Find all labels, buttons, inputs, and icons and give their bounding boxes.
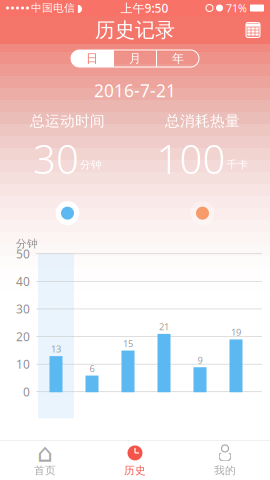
staticText: 总消耗热量 bbox=[165, 112, 240, 130]
staticText: 2016-7-21 bbox=[94, 79, 176, 102]
button[interactable]: 日 bbox=[71, 50, 113, 67]
staticText: 分钟 bbox=[16, 237, 38, 250]
staticText: 71% bbox=[226, 1, 247, 15]
staticText: 40 bbox=[16, 273, 30, 289]
staticText: 9 bbox=[197, 354, 202, 366]
button[interactable]: 年 bbox=[157, 50, 199, 67]
button[interactable]: ⌂ bbox=[0, 441, 90, 480]
staticText: 上午9:50 bbox=[120, 0, 168, 16]
staticText: 20 bbox=[16, 329, 30, 344]
staticText: 首页 bbox=[34, 464, 56, 477]
staticText: 15 bbox=[123, 337, 133, 350]
staticText: 分钟 bbox=[80, 158, 102, 171]
staticText: ◗ bbox=[77, 2, 83, 14]
button[interactable]: 历史 bbox=[90, 441, 180, 480]
staticText: 中国电信 bbox=[31, 1, 75, 14]
staticText: 50 bbox=[16, 246, 30, 262]
staticText: 13 bbox=[51, 343, 61, 355]
button[interactable]: 月 bbox=[114, 50, 156, 67]
staticText: 千卡 bbox=[226, 158, 248, 171]
staticText: 我的 bbox=[214, 464, 236, 477]
staticText: 年 bbox=[172, 51, 184, 66]
staticText: 30 bbox=[33, 132, 79, 185]
staticText: 日 bbox=[86, 51, 98, 66]
staticText: 21 bbox=[159, 320, 169, 333]
staticText: 历史 bbox=[124, 464, 146, 477]
staticText: 月 bbox=[129, 51, 141, 66]
staticText: 历史记录 bbox=[95, 18, 175, 42]
staticText: ⌂ bbox=[37, 439, 53, 467]
staticText: 0 bbox=[23, 384, 30, 400]
button[interactable]: Calendar bbox=[236, 16, 270, 44]
staticText: 6 bbox=[89, 362, 94, 375]
staticText: 10 bbox=[16, 356, 30, 372]
button[interactable]: 我的 bbox=[180, 441, 270, 480]
staticText: 30 bbox=[16, 301, 30, 317]
staticText: 总运动时间 bbox=[30, 112, 105, 130]
staticText: 19 bbox=[231, 326, 241, 338]
staticText: 100 bbox=[156, 132, 225, 185]
